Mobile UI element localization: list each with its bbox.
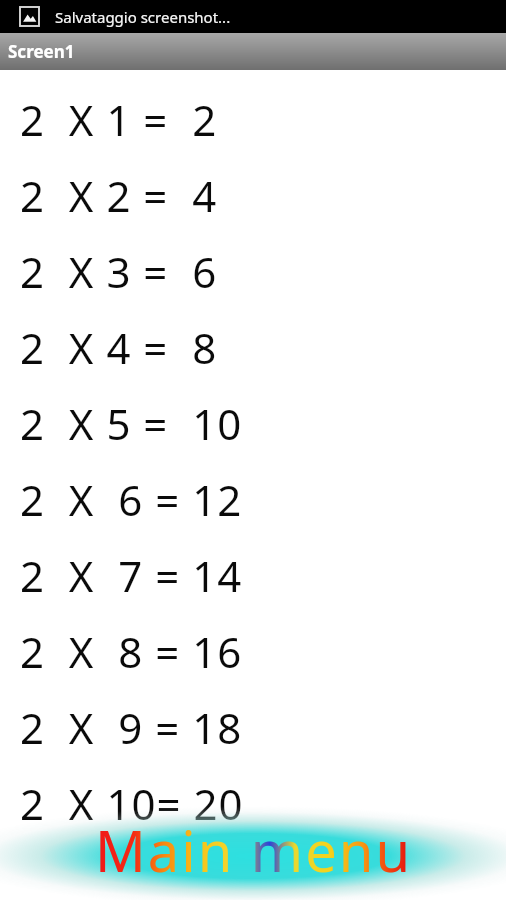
button[interactable]: 2 X 10= 20 [0, 765, 506, 841]
staticText: Salvataggio screenshot... [55, 7, 231, 27]
staticText: 2 X 2 = 4 [20, 167, 218, 224]
button[interactable]: 2 X 7 = 14 [0, 537, 506, 613]
staticText: Screen1 [8, 40, 75, 63]
staticText: 2 X 5 = 10 [20, 395, 243, 452]
button[interactable]: 2 X 1 = 2 [0, 81, 506, 157]
button[interactable]: 2 X 2 = 4 [0, 157, 506, 233]
button[interactable]: 2 X 8 = 16 [0, 613, 506, 689]
staticText: 2 X 9 = 18 [20, 699, 243, 756]
button[interactable]: 2 X 6 = 12 [0, 461, 506, 537]
button[interactable]: 2 X 5 = 10 [0, 385, 506, 461]
button[interactable]: 2 X 3 = 6 [0, 233, 506, 309]
staticText: Main menu [95, 812, 412, 888]
staticText: 2 X 7 = 14 [20, 547, 243, 604]
staticText: 2 X 8 = 16 [20, 623, 243, 680]
button[interactable]: Main menu [0, 800, 506, 900]
button[interactable]: 2 X 9 = 18 [0, 689, 506, 765]
staticText: 2 X 6 = 12 [20, 471, 243, 528]
staticText: 2 X 4 = 8 [20, 319, 218, 376]
staticText: 2 X 1 = 2 [20, 91, 218, 148]
staticText: 2 X 3 = 6 [20, 243, 218, 300]
button[interactable]: 2 X 4 = 8 [0, 309, 506, 385]
staticText: 2 X 10= 20 [20, 775, 244, 832]
